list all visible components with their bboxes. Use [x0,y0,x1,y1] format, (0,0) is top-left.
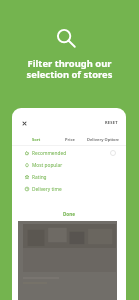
button[interactable]: Done [12,195,126,221]
staticText: Filter through our selection of stores [0,57,139,80]
staticText: Done [63,211,75,217]
staticText: Price [65,137,75,142]
button[interactable]: Rating [12,171,126,183]
button[interactable]: Most popular [12,159,126,171]
staticText: RESET [105,120,118,125]
staticText: Rating [32,174,47,181]
staticText: Sort [32,137,41,142]
button[interactable]: Delivery time [12,183,126,195]
button[interactable]: RESET [103,118,120,127]
button[interactable]: Sort [27,133,45,145]
button[interactable]: Price [61,133,79,145]
staticText: Recommended [32,150,67,157]
staticText: Most popular [32,162,63,169]
staticText: Delivery time [32,186,62,193]
button[interactable]: Recommended [12,147,126,159]
button[interactable]: Close [19,118,30,129]
button[interactable]: Delivery Options [87,133,119,145]
staticText: Delivery Options [87,137,119,142]
